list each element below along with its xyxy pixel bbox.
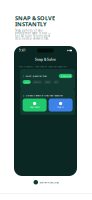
button[interactable]: Math (23, 80, 31, 84)
staticText: our AI tutor returns clear (15, 34, 50, 37)
staticText: Math (24, 81, 29, 83)
staticText: Type It (57, 106, 64, 108)
staticText: SMART HIVE LABS (39, 181, 58, 184)
staticText: Snap Photo (30, 106, 40, 108)
staticText: 2. Upload a photo or type your question (23, 94, 63, 97)
button[interactable]: Physics (32, 80, 42, 84)
staticText: AI Powered (61, 75, 71, 77)
staticText: step-by-step answers fast. (15, 37, 49, 40)
staticText: INSTANTLY (15, 20, 47, 28)
button[interactable]: Type It (49, 98, 73, 111)
staticText: 1. Select Question Type (23, 74, 47, 77)
staticText: Bio (55, 81, 58, 83)
button[interactable]: Bio (53, 80, 59, 84)
staticText: Snap & Solve (35, 57, 56, 62)
staticText: Snap a photo of any (15, 28, 42, 32)
button[interactable]: Chem (44, 80, 52, 84)
staticText: Physics (34, 81, 41, 83)
staticText: problem or type it out — (15, 31, 51, 35)
staticText: 9:41 (19, 49, 26, 52)
staticText: Pick a subject, then snap or type your q… (19, 65, 67, 68)
staticText: SNAP & SOLVE (15, 14, 55, 22)
button[interactable]: AI Powered (59, 74, 72, 78)
staticText: Chem (45, 81, 50, 83)
button[interactable]: Snap Photo (23, 98, 47, 111)
